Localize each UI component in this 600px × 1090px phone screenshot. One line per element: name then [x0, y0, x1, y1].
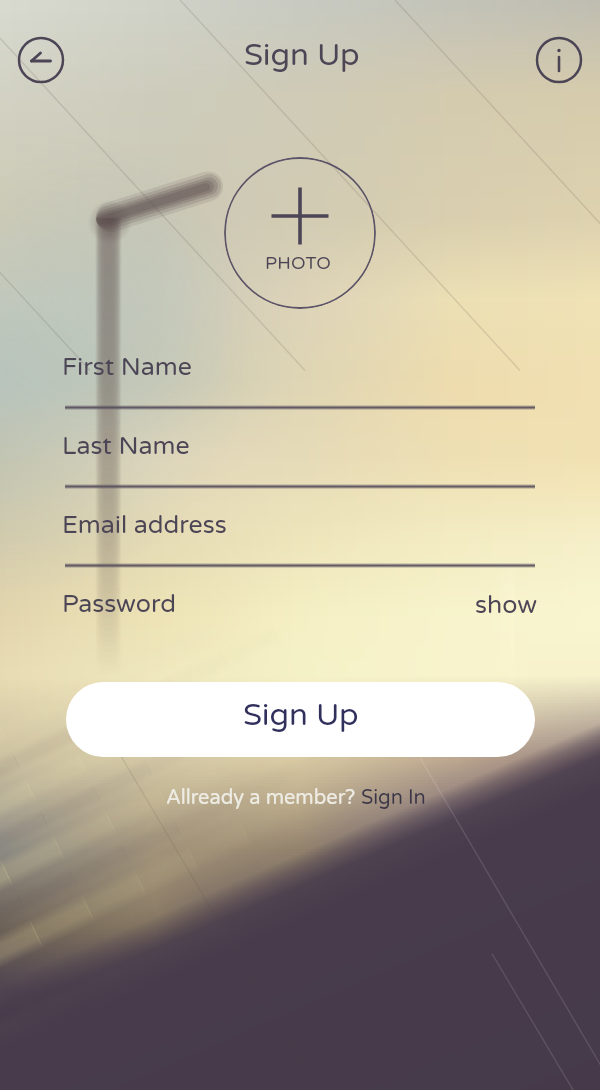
staticText: Password — [62, 589, 176, 619]
staticText: Sign Up — [243, 697, 359, 734]
staticText: Sign Up — [244, 37, 360, 74]
button[interactable]: Password — [62, 589, 538, 635]
staticText: Email address — [62, 510, 227, 540]
button[interactable]: Email address — [62, 504, 535, 556]
staticText: First Name — [62, 352, 192, 382]
button[interactable]: Last Name — [62, 425, 535, 477]
button[interactable]: Information — [533, 34, 585, 86]
button[interactable]: First Name — [62, 346, 535, 398]
button[interactable]: Add photo — [224, 157, 376, 309]
button[interactable]: Sign In — [361, 786, 426, 810]
staticText: Last Name — [62, 431, 190, 461]
staticText: show — [475, 590, 538, 620]
staticText: PHOTO — [265, 252, 331, 274]
button[interactable]: show — [470, 590, 538, 636]
button[interactable]: Back — [15, 34, 67, 86]
button[interactable]: Sign Up — [66, 682, 535, 757]
staticText: Allready a member? — [166, 786, 361, 810]
